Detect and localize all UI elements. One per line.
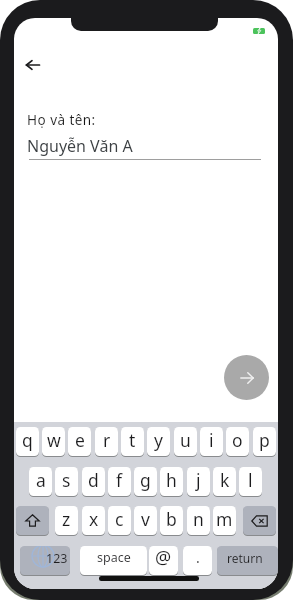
button[interactable]: a xyxy=(29,467,52,496)
staticText: h xyxy=(166,468,177,492)
button[interactable]: q xyxy=(16,427,39,456)
button[interactable]: m xyxy=(213,506,236,535)
button[interactable]: r xyxy=(95,427,118,456)
button[interactable]: e xyxy=(68,427,91,456)
staticText: r xyxy=(103,428,111,452)
button[interactable] xyxy=(16,506,49,535)
staticText: t xyxy=(129,428,136,452)
staticText: e xyxy=(75,428,85,452)
button[interactable]: @ xyxy=(149,546,178,575)
button[interactable]: 123 xyxy=(20,546,70,575)
staticText: Họ và tên: xyxy=(27,111,96,129)
staticText: a xyxy=(36,468,46,492)
button[interactable]: d xyxy=(82,467,105,496)
staticText: g xyxy=(140,468,151,492)
staticText: m xyxy=(216,507,233,531)
staticText: y xyxy=(154,428,163,452)
button[interactable]: y xyxy=(147,427,170,456)
staticText: q xyxy=(22,428,33,452)
button[interactable]: . xyxy=(183,546,212,575)
button[interactable]: b xyxy=(160,506,183,535)
button[interactable]: s xyxy=(55,467,78,496)
staticText: z xyxy=(62,507,71,531)
button[interactable]: g xyxy=(134,467,157,496)
button[interactable]: p xyxy=(253,427,276,456)
staticText: Nguyễn Văn A xyxy=(27,135,133,157)
staticText: . xyxy=(196,548,200,567)
button[interactable] xyxy=(243,506,276,535)
staticText: v xyxy=(141,507,150,531)
button[interactable]: return xyxy=(217,546,278,575)
button[interactable]: z xyxy=(55,506,78,535)
button[interactable] xyxy=(18,53,48,77)
button[interactable]: j xyxy=(187,467,210,496)
staticText: u xyxy=(180,428,191,452)
staticText: return xyxy=(227,550,263,566)
button[interactable]: v xyxy=(134,506,157,535)
staticText: @ xyxy=(155,546,172,570)
button[interactable]: o xyxy=(226,427,249,456)
button[interactable]: w xyxy=(42,427,65,456)
button[interactable]: u xyxy=(174,427,197,456)
staticText: w xyxy=(47,428,61,452)
staticText: k xyxy=(220,468,230,492)
staticText: l xyxy=(248,468,253,492)
button[interactable]: c xyxy=(108,506,131,535)
staticText: i xyxy=(209,428,214,452)
staticText: d xyxy=(88,468,99,492)
button[interactable]: space xyxy=(80,546,147,575)
button[interactable]: i xyxy=(200,427,223,456)
staticText: j xyxy=(196,468,201,492)
button[interactable]: x xyxy=(82,506,105,535)
staticText: p xyxy=(259,428,270,452)
button[interactable]: h xyxy=(160,467,183,496)
staticText: n xyxy=(193,507,204,531)
staticText: 123 xyxy=(46,550,68,567)
staticText: c xyxy=(115,507,124,531)
button[interactable] xyxy=(224,355,269,400)
button[interactable]: l xyxy=(239,467,262,496)
button[interactable]: t xyxy=(121,427,144,456)
staticText: o xyxy=(232,428,243,452)
button[interactable]: f xyxy=(108,467,131,496)
staticText: b xyxy=(166,507,177,531)
staticText: s xyxy=(62,468,71,492)
button[interactable]: k xyxy=(213,467,236,496)
staticText: x xyxy=(89,507,99,531)
button[interactable]: n xyxy=(187,506,210,535)
staticText: space xyxy=(97,549,131,566)
staticText: f xyxy=(116,468,123,492)
